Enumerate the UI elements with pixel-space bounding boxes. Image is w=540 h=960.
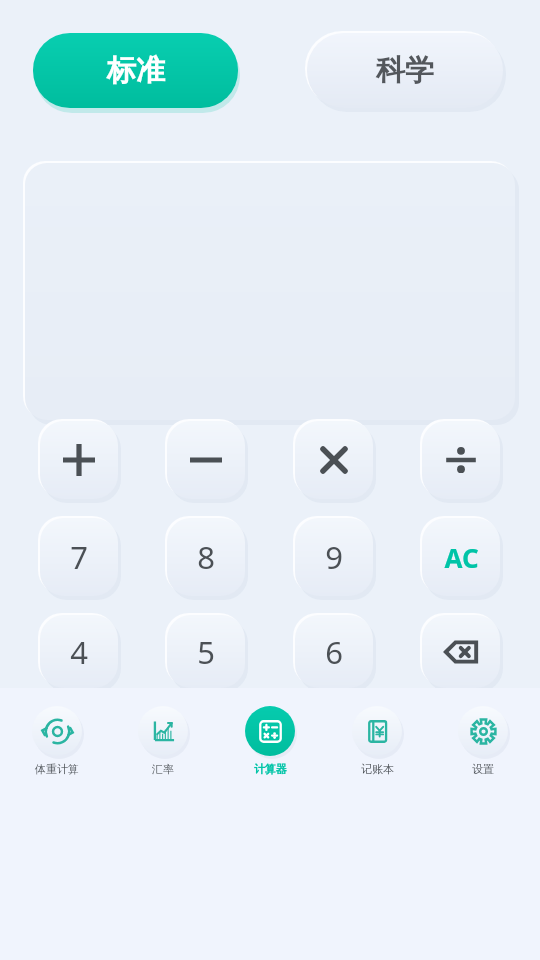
staticText: 汇率 (152, 762, 174, 776)
staticText: 9 (325, 536, 343, 578)
button[interactable]: Multiply (295, 421, 373, 499)
button[interactable]: Backspace (422, 615, 500, 688)
staticText: AC (444, 540, 479, 575)
staticText: 体重计算 (35, 762, 79, 776)
button[interactable]: 体重计算 (7, 704, 107, 776)
button[interactable]: 7 (40, 518, 118, 596)
button[interactable]: AC (422, 518, 500, 596)
staticText: 5 (197, 631, 215, 673)
button[interactable]: 汇率 (113, 704, 213, 776)
staticText: 记账本 (361, 762, 394, 776)
button[interactable]: Plus (40, 421, 118, 499)
staticText: 标准 (107, 52, 165, 89)
button[interactable]: 8 (167, 518, 245, 596)
staticText: 计算器 (254, 762, 287, 776)
button[interactable]: 计算器 (220, 704, 320, 776)
button[interactable]: 4 (40, 615, 118, 688)
staticText: 7 (70, 536, 88, 578)
button[interactable]: 记账本 (327, 704, 427, 776)
button[interactable]: 9 (295, 518, 373, 596)
button[interactable]: 标准 (33, 33, 238, 108)
staticText: 8 (197, 536, 215, 578)
button[interactable]: Divide (422, 421, 500, 499)
button[interactable]: Minus (167, 421, 245, 499)
button[interactable]: 科学 (307, 33, 503, 108)
staticText: 科学 (376, 52, 434, 89)
staticText: 6 (325, 631, 343, 673)
button[interactable]: 6 (295, 615, 373, 688)
button[interactable]: 5 (167, 615, 245, 688)
button[interactable]: 设置 (433, 704, 533, 776)
staticText: 设置 (472, 762, 494, 776)
staticText: 4 (70, 631, 88, 673)
